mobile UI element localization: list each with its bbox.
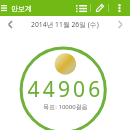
button[interactable]: Previous day (2, 16, 18, 32)
button[interactable]: Menu (0, 0, 10, 16)
button[interactable]: Next day (112, 16, 128, 32)
button[interactable]: List (74, 0, 88, 16)
button[interactable]: Edit (94, 0, 106, 16)
button[interactable]: More options (113, 0, 125, 16)
staticText: 44906 (27, 75, 104, 104)
staticText: 목표: 10000걸음 (43, 103, 88, 111)
staticText: 2014년 11월 26일 (수) (31, 20, 99, 29)
staticText: 만보계 (11, 4, 32, 13)
